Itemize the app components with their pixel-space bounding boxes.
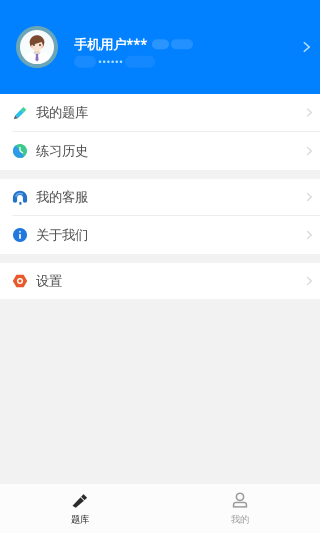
button[interactable]: 手机用户*** — [0, 0, 320, 94]
staticText: 我的题库 — [36, 104, 88, 121]
staticText: 我的客服 — [36, 189, 88, 205]
button[interactable]: 题库 — [0, 484, 160, 533]
staticText: 关于我们 — [36, 227, 88, 243]
staticText: 设置 — [36, 273, 62, 289]
staticText: 练习历史 — [36, 143, 88, 159]
button[interactable]: 我的题库 — [0, 94, 320, 132]
button[interactable]: 我的客服 — [0, 179, 320, 216]
button[interactable]: 设置 — [0, 263, 320, 299]
staticText: 题库 — [71, 514, 89, 525]
button[interactable]: 练习历史 — [0, 132, 320, 170]
staticText: 我的 — [231, 514, 249, 525]
button[interactable]: 关于我们 — [0, 216, 320, 254]
button[interactable]: 我的 — [160, 484, 320, 533]
staticText: 手机用户*** — [74, 35, 147, 53]
